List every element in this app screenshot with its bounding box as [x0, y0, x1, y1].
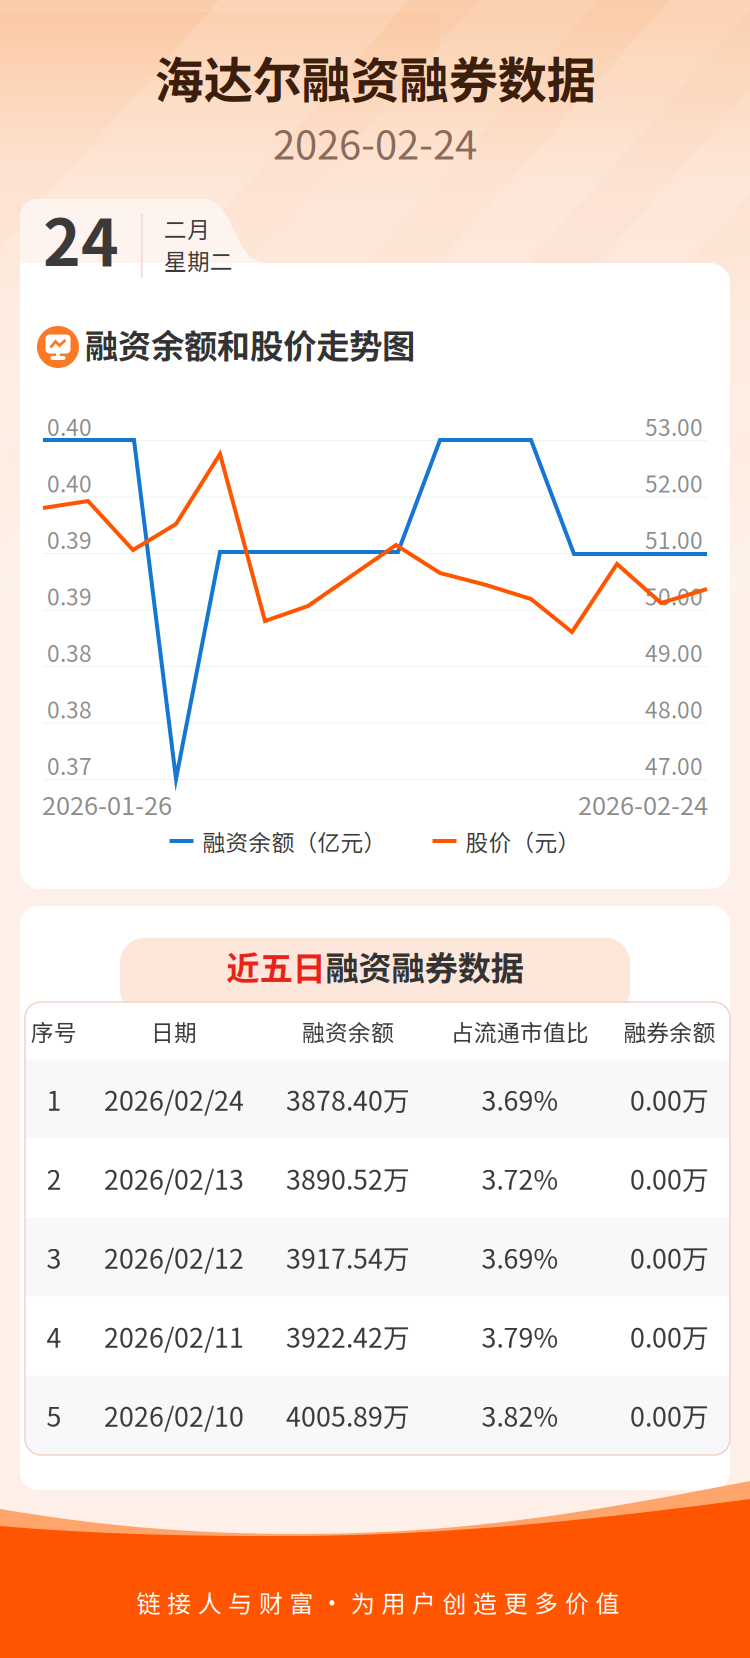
staticText: 2 — [46, 1159, 61, 1197]
staticText: 融券余额 — [623, 1015, 715, 1047]
staticText: 3922.42万 — [286, 1317, 410, 1355]
staticText: 0.00万 — [630, 1238, 709, 1276]
staticText: 星期二 — [164, 244, 233, 276]
staticText: 0.38 — [47, 636, 92, 668]
staticText: 2026/02/13 — [104, 1159, 244, 1197]
staticText: 3.82% — [481, 1396, 558, 1434]
staticText: 3.69% — [481, 1080, 558, 1118]
staticText: 0.40 — [47, 466, 92, 499]
staticText: 1 — [46, 1080, 61, 1118]
staticText: 50.00 — [645, 579, 703, 612]
staticText: 52.00 — [645, 466, 703, 499]
staticText: 序号 — [31, 1015, 77, 1047]
staticText: 3890.52万 — [286, 1159, 410, 1197]
staticText: 5 — [46, 1396, 61, 1434]
staticText: 融资余额和股价走势图 — [85, 320, 415, 368]
staticText: 3.69% — [481, 1238, 558, 1276]
staticText: 48.00 — [645, 692, 703, 725]
staticText: 股价（元） — [465, 825, 580, 857]
staticText: 0.39 — [47, 523, 92, 555]
staticText: 3917.54万 — [286, 1238, 410, 1276]
staticText: 0.37 — [47, 749, 92, 781]
staticText: 2026-02-24 — [578, 786, 708, 822]
staticText: 2026-02-24 — [273, 113, 477, 171]
staticText: 融资余额 — [302, 1015, 394, 1047]
staticText: 融资余额（亿元） — [202, 825, 386, 857]
staticText: 链接人与财富·为用户创造更多价值 — [136, 1585, 619, 1619]
staticText: 51.00 — [645, 523, 703, 555]
staticText: 0.00万 — [630, 1396, 709, 1434]
staticText: 47.00 — [645, 749, 703, 781]
staticText: 3 — [46, 1238, 61, 1276]
staticText: 0.00万 — [630, 1317, 709, 1355]
staticText: 3878.40万 — [286, 1080, 410, 1118]
staticText: 占流通市值比 — [451, 1015, 589, 1047]
staticText: 日期 — [151, 1015, 197, 1047]
staticText: 4005.89万 — [286, 1396, 410, 1434]
staticText: 0.38 — [47, 692, 92, 725]
staticText: 2026-01-26 — [42, 786, 172, 822]
staticText: 53.00 — [645, 410, 703, 442]
staticText: 0.00万 — [630, 1159, 709, 1197]
staticText: 3.72% — [481, 1159, 558, 1197]
staticText: 49.00 — [645, 636, 703, 668]
staticText: 海达尔融资融券数据 — [154, 41, 595, 113]
staticText: 2026/02/10 — [104, 1396, 244, 1434]
staticText: 二月 — [164, 212, 210, 244]
staticText: 0.00万 — [630, 1080, 709, 1118]
staticText: 0.40 — [47, 410, 92, 442]
staticText: 2026/02/24 — [104, 1080, 244, 1118]
staticText: 近五日 — [226, 942, 325, 990]
staticText: 4 — [46, 1317, 61, 1355]
staticText: 0.39 — [47, 579, 92, 612]
staticText: 24 — [43, 192, 119, 284]
staticText: 2026/02/12 — [104, 1238, 244, 1276]
staticText: 2026/02/11 — [104, 1317, 244, 1355]
staticText: 3.79% — [481, 1317, 558, 1355]
staticText: 融资融券数据 — [325, 942, 523, 990]
